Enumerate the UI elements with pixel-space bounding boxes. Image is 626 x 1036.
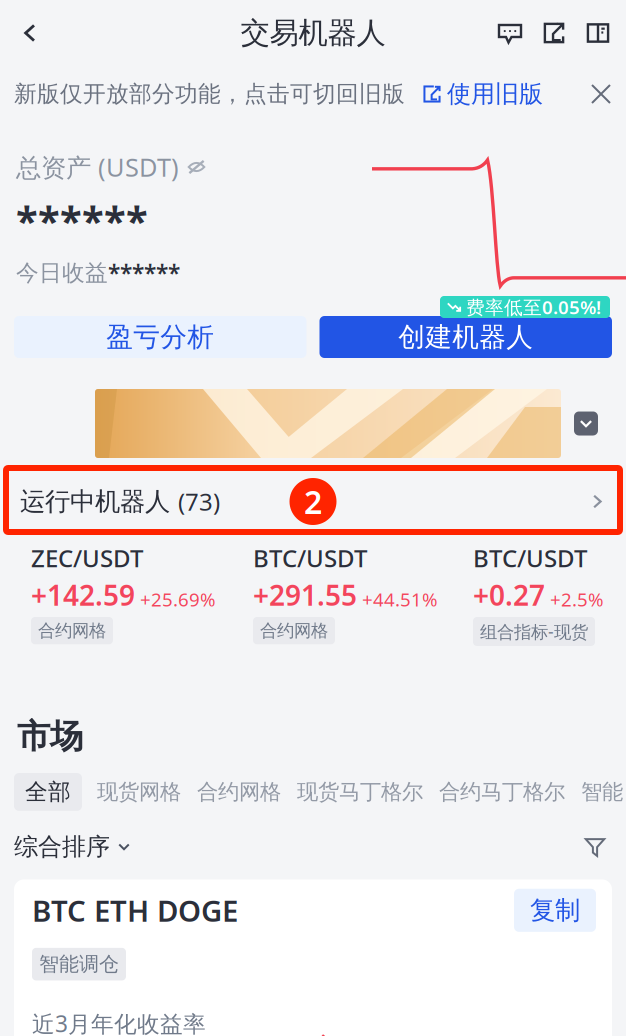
staticText: +44.51% <box>362 587 438 612</box>
staticText: (73) <box>178 486 220 517</box>
button[interactable]: 运行中机器人 <box>6 473 620 529</box>
staticText: 创建机器人 <box>398 321 533 353</box>
staticText: 智能调仓 <box>39 952 119 976</box>
staticText: +25.69% <box>140 587 216 612</box>
button[interactable]: 智能 <box>580 774 624 810</box>
button[interactable]: 全部 <box>14 773 82 811</box>
button[interactable]: Close <box>582 75 620 113</box>
staticText: 费率低至0.05%! <box>466 295 601 319</box>
button[interactable]: 盈亏分析 <box>14 316 306 358</box>
staticText: 合约网格 <box>197 779 281 805</box>
button[interactable]: 现货马丁格尔 <box>296 774 424 810</box>
staticText: BTC/USDT <box>253 542 367 574</box>
staticText: 全部 <box>25 778 71 806</box>
staticText: 盈亏分析 <box>106 321 214 353</box>
staticText: 现货马丁格尔 <box>297 779 423 805</box>
staticText: 今日收益 <box>16 259 108 287</box>
staticText: 复制 <box>530 895 580 926</box>
button[interactable]: Filter <box>582 834 608 860</box>
button[interactable]: Back <box>8 7 52 59</box>
button[interactable]: Chat <box>488 7 532 59</box>
staticText: 近3月年化收益率 <box>32 1008 206 1036</box>
staticText: 合约网格 <box>38 620 106 641</box>
button[interactable]: 使用旧版 <box>423 79 543 109</box>
staticText: ****** <box>108 258 180 288</box>
staticText: +0.27 <box>473 576 545 614</box>
staticText: 总资产 (USDT) <box>16 150 179 184</box>
button[interactable]: 创建机器人 <box>319 316 612 358</box>
staticText: ****** <box>16 193 148 246</box>
staticText: 2 <box>304 480 322 523</box>
staticText: BTC/USDT <box>473 542 587 574</box>
button[interactable]: 合约网格 <box>196 774 282 810</box>
staticText: +291.55 <box>253 576 357 614</box>
button[interactable]: Share <box>532 7 576 59</box>
staticText: 交易机器人 <box>240 15 385 51</box>
button[interactable]: Guide <box>576 7 620 59</box>
staticText: 智能 <box>581 779 623 805</box>
button[interactable]: 合约马丁格尔 <box>438 774 566 810</box>
staticText: 合约网格 <box>260 620 328 641</box>
staticText: 新版仅开放部分功能，点击可切回旧版 <box>14 80 405 108</box>
staticText: 合约马丁格尔 <box>439 779 565 805</box>
staticText: ZEC/USDT <box>31 542 143 574</box>
staticText: BTC ETH DOGE <box>32 891 238 930</box>
button[interactable]: 复制 <box>514 889 596 932</box>
staticText: +2.5% <box>550 587 604 612</box>
staticText: +142.59 <box>31 576 135 614</box>
button[interactable]: 综合排序 <box>14 832 131 861</box>
staticText: 使用旧版 <box>447 79 543 109</box>
button[interactable]: Collapse banner <box>574 411 598 435</box>
staticText: 组合指标-现货 <box>480 620 588 643</box>
staticText: 现货网格 <box>97 779 181 805</box>
staticText: 综合排序 <box>14 832 110 861</box>
button[interactable]: 现货网格 <box>96 774 182 810</box>
staticText: 市场 <box>17 716 83 757</box>
staticText: 运行中机器人 <box>20 486 178 517</box>
